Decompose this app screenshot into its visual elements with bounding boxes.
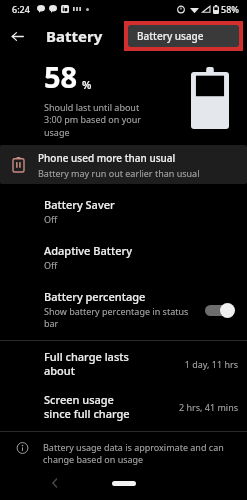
button[interactable]: Screen usage since full charge bbox=[0, 392, 247, 421]
button[interactable]: Battery percentage bbox=[0, 289, 247, 330]
staticText: Adaptive Battery bbox=[44, 243, 132, 258]
staticText: 2 hrs, 41 mins bbox=[178, 401, 238, 413]
button[interactable]: Phone used more than usual bbox=[0, 145, 247, 184]
staticText: Off bbox=[44, 259, 58, 271]
button[interactable]: Adaptive Battery bbox=[0, 243, 247, 271]
staticText: Battery usage bbox=[137, 29, 204, 43]
button[interactable]: Back bbox=[46, 474, 64, 492]
staticText: Should last until about 3:00 pm based on… bbox=[44, 101, 141, 139]
staticText: Battery may run out earlier than usual bbox=[38, 167, 200, 179]
staticText: % bbox=[82, 77, 92, 92]
staticText: 6:24 bbox=[12, 3, 30, 15]
button[interactable]: Full charge lasts about bbox=[0, 349, 247, 378]
staticText: 1 day, 11 hrs bbox=[184, 358, 238, 370]
staticText: Show battery percentage in status bar bbox=[44, 305, 189, 330]
staticText: 58% bbox=[221, 3, 239, 15]
staticText: Battery Saver bbox=[44, 197, 115, 212]
staticText: Battery usage data is approximate and ca… bbox=[43, 441, 224, 466]
staticText: Screen usage since full charge bbox=[44, 392, 142, 421]
button[interactable]: Battery Saver bbox=[0, 197, 247, 225]
staticText: Battery percentage bbox=[44, 289, 146, 304]
button[interactable]: Back bbox=[0, 19, 34, 53]
staticText: 58 bbox=[44, 57, 78, 96]
staticText: Phone used more than usual bbox=[38, 151, 176, 165]
button[interactable]: Battery usage bbox=[128, 25, 239, 47]
staticText: Battery bbox=[46, 26, 103, 46]
staticText: Off bbox=[44, 213, 58, 225]
button[interactable]: Home bbox=[112, 481, 136, 486]
staticText: Full charge lasts about bbox=[44, 349, 142, 378]
